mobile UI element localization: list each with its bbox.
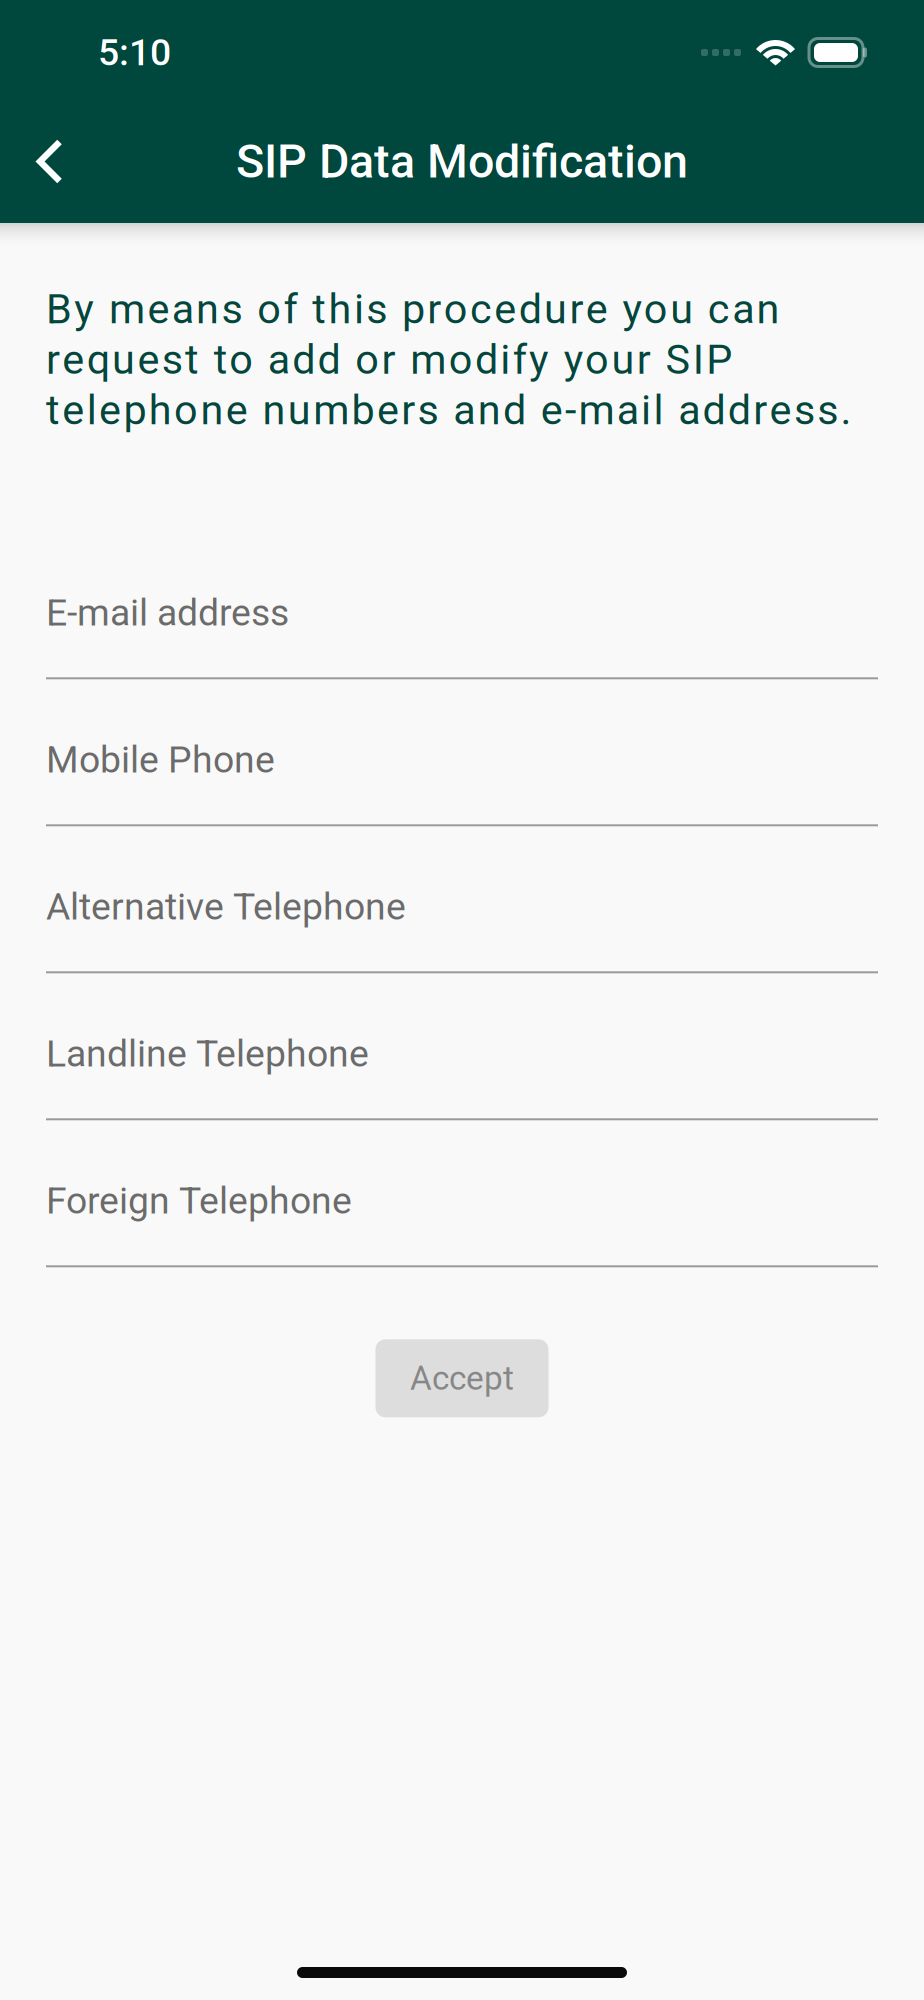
staticText: Landline Telephone (46, 1032, 369, 1076)
staticText: Foreign Telephone (46, 1179, 352, 1223)
button[interactable]: E-mail address (46, 591, 878, 679)
staticText: Alternative Telephone (46, 885, 406, 929)
staticText: Accept (410, 1359, 514, 1398)
button[interactable]: Mobile Phone (46, 738, 878, 826)
button[interactable]: Back (0, 110, 89, 212)
staticText: 5:10 (98, 31, 171, 74)
button[interactable]: Foreign Telephone (46, 1179, 878, 1267)
staticText: By means of this procedure you can reque… (46, 285, 852, 434)
staticText: E-mail address (46, 591, 289, 635)
staticText: Mobile Phone (46, 738, 275, 782)
staticText: SIP Data Modification (236, 134, 688, 189)
button[interactable]: Accept (375, 1339, 548, 1417)
button[interactable]: Landline Telephone (46, 1032, 878, 1120)
button[interactable]: Alternative Telephone (46, 885, 878, 973)
